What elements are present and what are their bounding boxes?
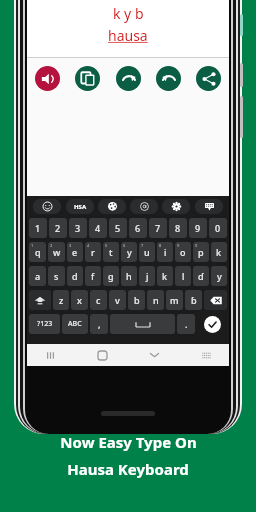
button[interactable]: y <box>121 242 137 262</box>
staticText: e <box>72 246 78 258</box>
button[interactable]: u <box>139 242 155 262</box>
button[interactable]: s <box>48 266 65 286</box>
button[interactable]: y <box>211 266 227 286</box>
staticText: Hausa Keyboard <box>67 459 189 479</box>
button[interactable]: f <box>85 266 101 286</box>
button[interactable]: 2 <box>49 218 67 238</box>
button[interactable]: r <box>85 242 101 262</box>
staticText: 8 <box>159 243 162 248</box>
button[interactable]: j <box>139 266 155 286</box>
staticText: 4 <box>87 243 90 248</box>
button[interactable]: Settings <box>162 199 190 214</box>
staticText: x <box>77 294 82 306</box>
button[interactable]: Undo <box>156 66 181 91</box>
staticText: 3 <box>75 222 81 234</box>
staticText: 9 <box>177 243 180 248</box>
button[interactable]: Share <box>196 66 221 91</box>
staticText: hausa <box>108 26 148 45</box>
button[interactable]: Redo <box>116 66 141 91</box>
button[interactable]: p <box>193 242 209 262</box>
button[interactable]: . <box>177 314 195 334</box>
button[interactable]: m <box>166 290 183 310</box>
staticText: a <box>35 270 41 282</box>
button[interactable]: d <box>67 266 83 286</box>
button[interactable]: 4 <box>89 218 107 238</box>
button[interactable]: 6 <box>129 218 147 238</box>
staticText: ABC <box>68 319 82 329</box>
staticText: b <box>134 294 140 306</box>
button[interactable]: Keyboard <box>195 199 223 214</box>
button[interactable]: Emoji <box>33 199 61 214</box>
staticText: y <box>127 246 132 258</box>
staticText: k <box>216 246 222 258</box>
staticText: y <box>217 270 222 282</box>
button[interactable]: Enter <box>197 314 227 334</box>
button[interactable]: 0 <box>209 218 227 238</box>
button[interactable]: 8 <box>169 218 187 238</box>
button[interactable]: Switch keyboard <box>197 346 215 364</box>
button[interactable]: Recents <box>41 346 59 364</box>
button[interactable]: Mention <box>130 199 158 214</box>
button[interactable]: k <box>157 266 173 286</box>
staticText: 5 <box>105 243 108 248</box>
staticText: j <box>146 270 149 282</box>
button[interactable]: v <box>109 290 126 310</box>
button[interactable]: ABC <box>62 314 88 334</box>
button[interactable]: l <box>175 266 191 286</box>
button[interactable]: 5 <box>109 218 127 238</box>
button[interactable]: ɗ <box>193 266 209 286</box>
button[interactable]: n <box>147 290 164 310</box>
button[interactable]: g <box>103 266 119 286</box>
staticText: c <box>96 294 101 306</box>
button[interactable]: x <box>71 290 88 310</box>
button[interactable]: Hide keyboard <box>145 346 163 364</box>
staticText: 6 <box>123 243 126 248</box>
staticText: 2 <box>55 222 61 234</box>
button[interactable] <box>110 314 175 334</box>
staticText: 5 <box>115 222 121 234</box>
staticText: f <box>91 270 95 282</box>
button[interactable]: k <box>211 242 227 262</box>
staticText: m <box>170 294 179 306</box>
staticText: Now Easy Type On <box>60 432 197 452</box>
button[interactable]: ɓ <box>185 290 202 310</box>
button[interactable]: c <box>90 290 107 310</box>
button[interactable]: b <box>128 290 145 310</box>
button[interactable]: q <box>29 242 46 262</box>
button[interactable]: 7 <box>149 218 167 238</box>
staticText: 8 <box>175 222 181 234</box>
button[interactable]: Backspace <box>204 290 227 310</box>
staticText: o <box>180 246 186 258</box>
staticText: w <box>53 246 61 258</box>
staticText: 1 <box>31 243 34 248</box>
staticText: , <box>98 318 101 330</box>
button[interactable]: h <box>121 266 137 286</box>
button[interactable]: , <box>90 314 108 334</box>
button[interactable]: 3 <box>69 218 87 238</box>
staticText: q <box>35 246 41 258</box>
button[interactable]: o <box>175 242 191 262</box>
button[interactable]: Speak <box>35 66 60 91</box>
staticText: k y b <box>113 4 144 23</box>
button[interactable]: 1 <box>29 218 47 238</box>
button[interactable]: 9 <box>189 218 207 238</box>
button[interactable]: HSA <box>66 199 94 214</box>
staticText: n <box>153 294 159 306</box>
button[interactable]: Theme <box>98 199 126 214</box>
button[interactable]: Home <box>93 346 111 364</box>
staticText: 9 <box>195 222 201 234</box>
staticText: 7 <box>141 243 144 248</box>
staticText: d <box>72 270 78 282</box>
button[interactable]: z <box>53 290 69 310</box>
button[interactable]: ?123 <box>29 314 60 334</box>
button[interactable]: t <box>103 242 119 262</box>
button[interactable]: i <box>157 242 173 262</box>
button[interactable]: w <box>48 242 65 262</box>
button[interactable]: Shift <box>29 290 51 310</box>
button[interactable]: a <box>29 266 46 286</box>
button[interactable]: e <box>67 242 83 262</box>
staticText: 3 <box>69 243 72 248</box>
staticText: 7 <box>155 222 161 234</box>
button[interactable]: Copy <box>75 66 100 91</box>
staticText: s <box>54 270 59 282</box>
